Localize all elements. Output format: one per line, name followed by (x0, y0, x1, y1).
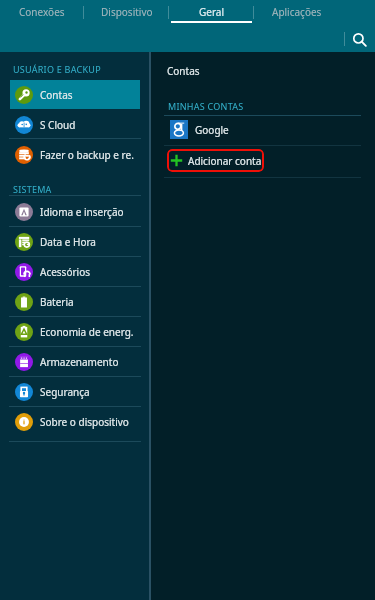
button[interactable]: Geral (169, 0, 254, 26)
button[interactable]: Contas (10, 80, 140, 109)
staticText: SISTEMA (13, 183, 52, 195)
button[interactable]: Google (164, 119, 361, 140)
button[interactable]: Fazer o backup e re. (10, 140, 140, 169)
staticText: Idioma e inserção (40, 205, 124, 219)
staticText: Contas (40, 88, 73, 102)
button[interactable]: Sobre o dispositivo (10, 407, 140, 436)
staticText: Sobre o dispositivo (40, 415, 129, 429)
staticText: S Cloud (40, 118, 76, 132)
staticText: Segurança (40, 385, 90, 399)
button[interactable]: S Cloud (10, 110, 140, 139)
button[interactable]: Dispositivo (84, 0, 169, 26)
staticText: Bateria (40, 295, 74, 309)
button[interactable]: Adicionar conta (167, 149, 264, 172)
staticText: MINHAS CONTAS (168, 100, 244, 112)
button[interactable]: Data e Hora (10, 227, 140, 256)
staticText: Aplicações (272, 5, 322, 19)
button[interactable]: Acessórios (10, 257, 140, 286)
staticText: Dispositivo (101, 5, 153, 19)
staticText: Adicionar conta (188, 154, 262, 168)
staticText: Fazer o backup e re. (40, 148, 134, 162)
button[interactable]: Armazenamento (10, 347, 140, 376)
staticText: Data e Hora (40, 235, 96, 249)
staticText: USUÁRIO E BACKUP (13, 63, 101, 75)
button[interactable]: Search (349, 29, 369, 49)
staticText: Acessórios (40, 265, 91, 279)
button[interactable]: Idioma e inserção (10, 197, 140, 226)
button[interactable]: Conexões (0, 0, 84, 26)
button[interactable]: Economia de energ. (10, 317, 140, 346)
staticText: Geral (199, 5, 225, 19)
staticText: Armazenamento (40, 355, 119, 369)
staticText: Google (195, 123, 229, 137)
button[interactable]: Bateria (10, 287, 140, 316)
button[interactable]: Segurança (10, 377, 140, 406)
staticText: Economia de energ. (40, 325, 134, 339)
button[interactable]: Aplicações (254, 0, 339, 26)
staticText: Conexões (19, 5, 65, 19)
staticText: Contas (167, 64, 200, 78)
